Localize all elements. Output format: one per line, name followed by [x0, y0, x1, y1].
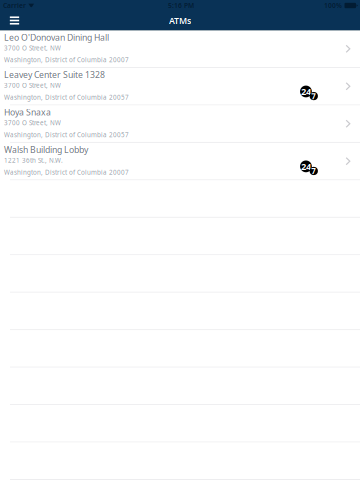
button[interactable]: Hoya Snaxa [0, 105, 360, 142]
staticText: Washington, District of Columbia 20007 [4, 56, 129, 64]
staticText: Carrier [3, 1, 26, 10]
staticText: 100% [324, 1, 342, 10]
button[interactable]: Walsh Building Lobby [0, 143, 360, 179]
staticText: 3700 O Street, NW [4, 44, 61, 52]
staticText: 3700 O Street, NW [4, 119, 61, 127]
staticText: Hoya Snaxa [4, 106, 51, 118]
staticText: 1221 36th St., N.W. [4, 156, 63, 165]
staticText: 5:16 PM [168, 1, 194, 10]
staticText: 3700 O Street, NW [4, 81, 61, 90]
staticText: ATMs [169, 14, 191, 26]
staticText: Leavey Center Suite 1328 [4, 69, 105, 81]
staticText: 7 [311, 91, 316, 101]
staticText: Washington, District of Columbia 20007 [4, 168, 129, 176]
staticText: 7 [311, 165, 316, 176]
button[interactable]: Leo O'Donovan Dining Hall [0, 31, 360, 67]
staticText: Leo O'Donovan Dining Hall [4, 31, 109, 43]
staticText: Washington, District of Columbia 20057 [4, 93, 129, 102]
button[interactable]: Leavey Center Suite 1328 [0, 68, 360, 105]
staticText: Walsh Building Lobby [4, 144, 88, 156]
staticText: Washington, District of Columbia 20057 [4, 130, 129, 139]
staticText: 24 [301, 160, 311, 173]
button[interactable]: Menu [3, 11, 26, 30]
staticText: 24 [301, 85, 311, 98]
